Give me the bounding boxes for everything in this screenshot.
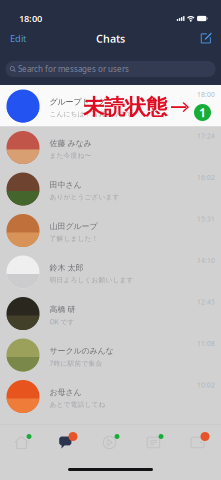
staticText: OK です [49,317,74,326]
staticText: 16:02 [197,173,215,182]
staticText: 14:10 [197,256,215,265]
staticText: 7時に駅前で集合 [49,359,102,368]
button[interactable]: 鈴木 太郎 [0,251,221,292]
staticText: 11:08 [197,339,215,348]
staticText: ありがとうございます [49,193,119,201]
staticText: 了解しました！ [49,234,98,242]
button[interactable]: お母さん [0,375,221,417]
staticText: 高橋 研 [49,304,75,314]
staticText: Chats [96,31,125,46]
staticText: また今度ね〜 [49,151,91,159]
staticText: 18:00 [197,90,215,99]
staticText: Search for messages or users [18,64,129,74]
button[interactable]: サークルのみんな [0,334,221,375]
staticText: 15:31 [197,214,215,223]
staticText: 田中さん [49,180,81,190]
button[interactable]: Edit [6,28,30,49]
staticText: グループトーク [49,97,105,107]
staticText: 17:24 [197,131,215,140]
staticText: お母さん [49,387,81,397]
button[interactable]: News [131,427,175,457]
button[interactable]: Home [0,427,43,457]
button[interactable]: Talk [43,427,87,457]
staticText: 未読状態 [83,94,167,120]
staticText: 山田グループ [49,221,97,231]
button[interactable]: 田中さん [0,168,221,209]
button[interactable]: 高橋 研 [0,292,221,334]
staticText: こんにちは！写真送ります [49,110,133,118]
button[interactable]: 山田グループ [0,209,221,251]
staticText: 明日よろしくお願いします [49,276,133,284]
staticText: 鈴木 太郎 [49,263,83,273]
button[interactable]: Search for messages or users [5,61,215,77]
staticText: 1 [199,104,206,120]
staticText: Edit [10,32,26,45]
staticText: 10:02 [197,380,215,389]
button[interactable]: VOOM [87,427,131,457]
button[interactable]: グループトーク [0,85,221,126]
staticText: 佐藤 みなみ [49,138,91,148]
staticText: あとで電話してね [49,400,105,408]
button[interactable]: 佐藤 みなみ [0,126,221,168]
button[interactable]: Wallet [175,427,219,457]
staticText: 12:45 [197,297,215,306]
button[interactable]: New Message [197,29,215,47]
staticText: 18:00 [19,12,42,25]
staticText: サークルのみんな [49,346,113,356]
